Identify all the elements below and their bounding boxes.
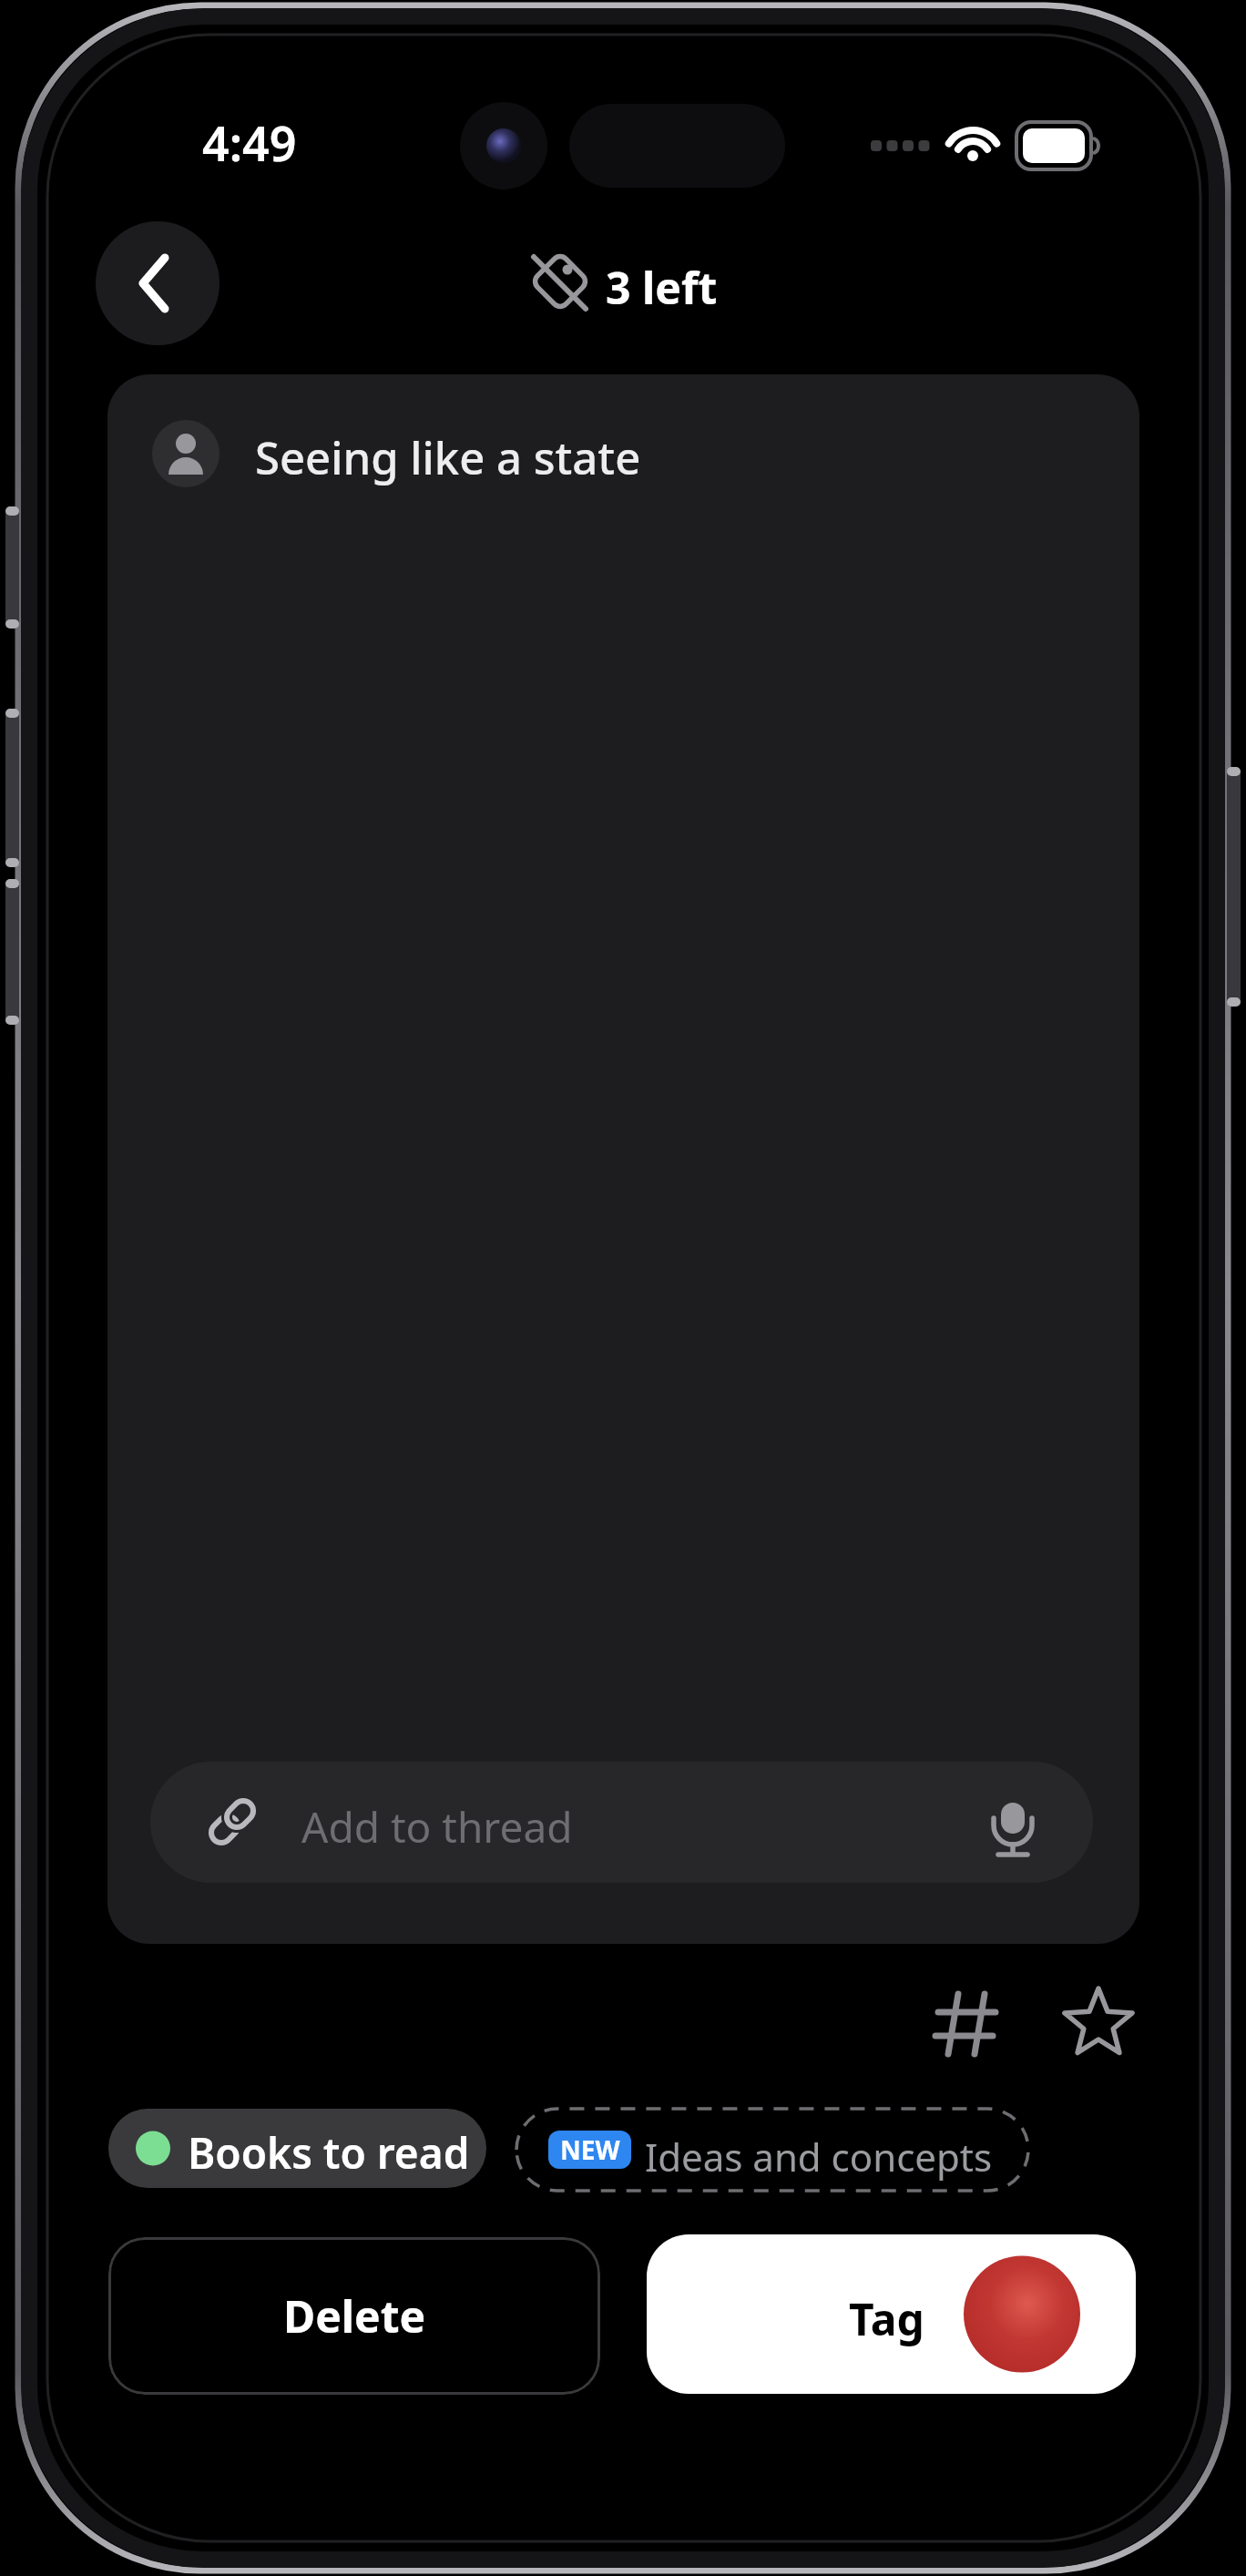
- staticText: Add to thread: [301, 1798, 573, 1855]
- button[interactable]: Tag: [647, 2234, 1136, 2394]
- button[interactable]: [96, 221, 220, 345]
- button[interactable]: NEW: [515, 2107, 1030, 2193]
- staticText: Delete: [283, 2286, 426, 2346]
- button[interactable]: Add to thread: [150, 1762, 1093, 1883]
- staticText: NEW: [560, 2132, 620, 2167]
- staticText: 3 left: [606, 258, 718, 317]
- staticText: 4:49: [202, 110, 297, 175]
- button[interactable]: Books to read: [108, 2109, 486, 2188]
- button[interactable]: [1057, 1980, 1140, 2064]
- button[interactable]: Delete: [108, 2237, 600, 2395]
- staticText: Tag: [849, 2289, 924, 2348]
- button[interactable]: [924, 1982, 1007, 2066]
- staticText: Ideas and concepts: [645, 2131, 993, 2182]
- staticText: Books to read: [188, 2124, 470, 2182]
- staticText: Seeing like a state: [255, 427, 641, 488]
